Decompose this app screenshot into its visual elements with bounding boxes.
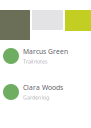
staticText: Clara Woods — [23, 83, 63, 92]
staticText: Garden log — [23, 94, 49, 101]
button[interactable]: Marcus Green — [0, 48, 91, 64]
button[interactable]: Clara Woods — [0, 84, 91, 100]
staticText: Marcus Green — [23, 47, 68, 56]
staticText: Trail notes — [23, 58, 48, 65]
